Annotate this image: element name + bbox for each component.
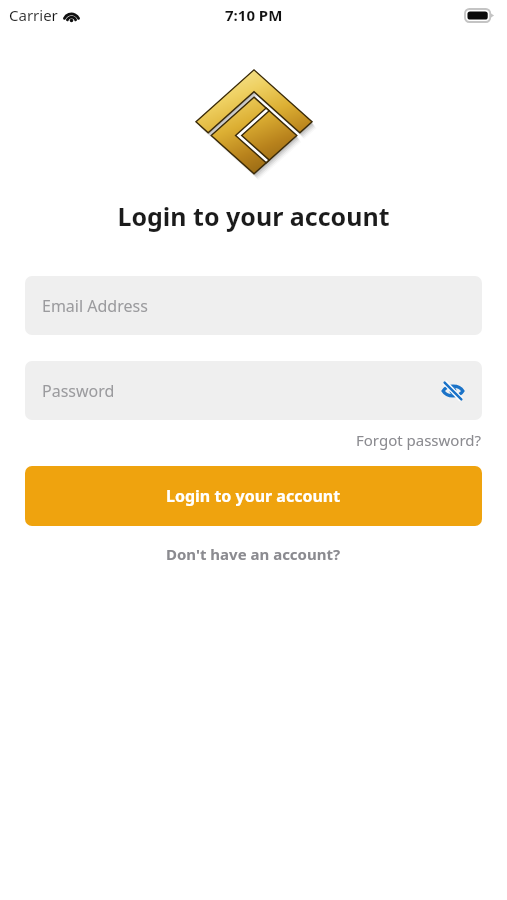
button[interactable]: Show password [436, 374, 470, 408]
staticText: Login to your account [0, 199, 507, 233]
staticText: Carrier [9, 5, 58, 25]
button[interactable]: Email Address [25, 276, 482, 335]
staticText: Don't have an account? [166, 544, 341, 564]
staticText: Password [42, 380, 115, 402]
button[interactable]: Forgot password? [356, 430, 482, 450]
button[interactable]: Password [25, 361, 482, 420]
staticText: Login to your account [166, 485, 341, 507]
button[interactable]: Login to your account [25, 466, 482, 526]
staticText: Email Address [42, 295, 148, 317]
staticText: Forgot password? [356, 430, 482, 450]
button[interactable]: Don't have an account? [166, 544, 341, 564]
staticText: 7:10 PM [225, 5, 283, 25]
